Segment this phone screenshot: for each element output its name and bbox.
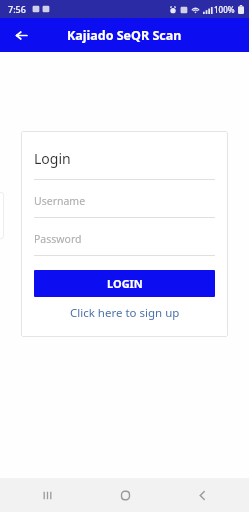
staticText: Login [34, 149, 71, 168]
button[interactable]: Recent apps [17, 478, 77, 512]
staticText: Username [34, 194, 86, 208]
button[interactable]: LOGIN [34, 270, 215, 297]
button[interactable]: Username [34, 180, 215, 218]
button[interactable]: Home [95, 478, 155, 512]
staticText: Password [34, 232, 82, 246]
button[interactable]: Password [34, 218, 215, 256]
staticText: Kajiado SeQR Scan [67, 27, 182, 44]
staticText: 100% [214, 4, 235, 15]
button[interactable]: Click here to sign up [34, 302, 215, 324]
button[interactable]: Back [172, 478, 232, 512]
staticText: Click here to sign up [70, 305, 180, 321]
button[interactable]: Back [9, 23, 33, 47]
staticText: 7:56 [8, 3, 26, 15]
staticText: LOGIN [107, 276, 143, 291]
